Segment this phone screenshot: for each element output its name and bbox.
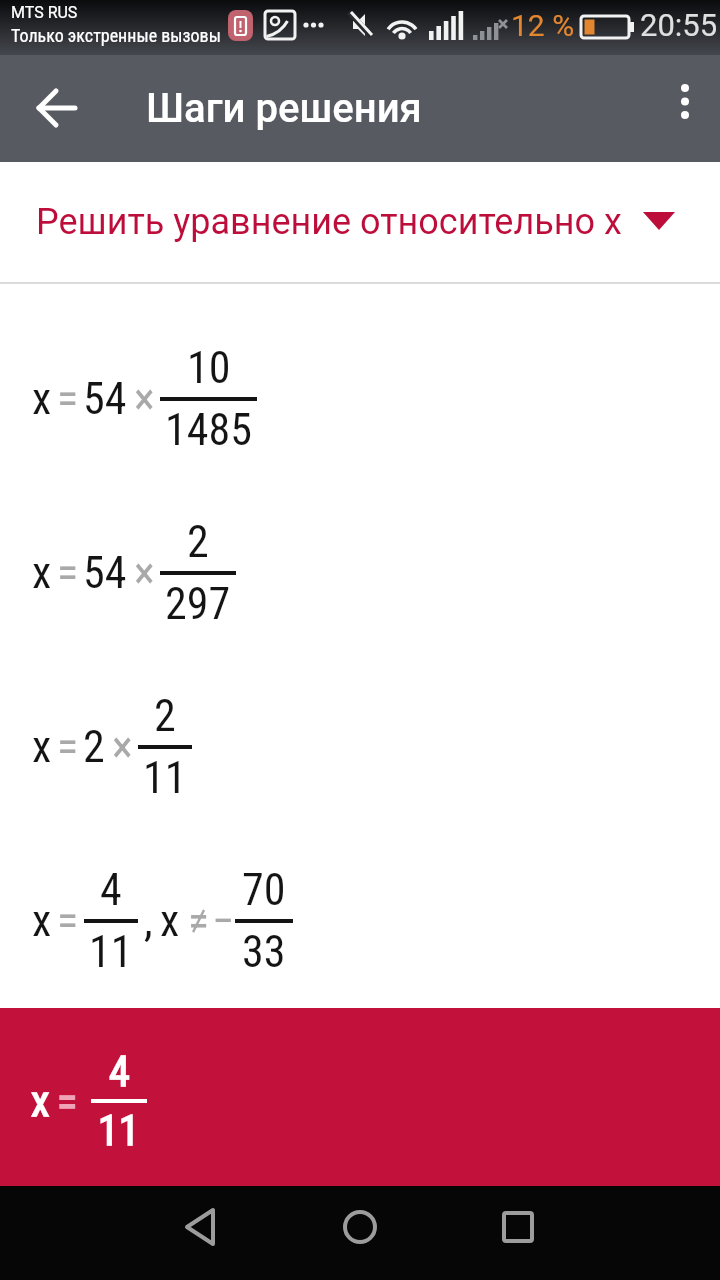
button[interactable] xyxy=(650,55,720,162)
staticText: 2 xyxy=(187,516,209,568)
staticText: = xyxy=(57,547,79,599)
staticText: 4 xyxy=(100,864,122,916)
staticText: 12 % xyxy=(511,8,575,43)
staticText: = xyxy=(57,721,79,773)
staticText: x xyxy=(160,895,180,947)
staticText: , xyxy=(144,895,153,947)
staticText: = xyxy=(57,1077,78,1126)
staticText: × xyxy=(112,721,133,773)
staticText: x xyxy=(31,1077,50,1126)
staticText: x xyxy=(32,721,52,773)
staticText: 33 xyxy=(242,926,286,978)
staticText: × xyxy=(134,547,155,599)
staticText: = xyxy=(57,373,79,425)
staticText: = xyxy=(57,895,79,947)
staticText: × xyxy=(134,373,155,425)
staticText: 1485 xyxy=(165,404,252,456)
staticText: ≠ xyxy=(188,895,210,947)
staticText: 11 xyxy=(143,752,187,804)
staticText: Решить уравнение относительно x xyxy=(36,201,622,243)
staticText: MTS RUS xyxy=(11,3,78,22)
button[interactable]: Решить уравнение относительно x xyxy=(0,162,720,282)
staticText: 20:55 xyxy=(640,7,718,43)
staticText: Шаги решения xyxy=(146,85,422,132)
staticText: 4 xyxy=(109,1047,130,1096)
staticText: 297 xyxy=(165,578,231,630)
staticText: 70 xyxy=(242,864,286,916)
staticText: Только экстренные вызовы xyxy=(11,25,221,46)
staticText: − xyxy=(212,895,234,947)
staticText: 11 xyxy=(89,926,133,978)
staticText: 2 xyxy=(83,721,105,773)
staticText: 2 xyxy=(154,690,176,742)
button[interactable] xyxy=(320,1187,400,1267)
button[interactable] xyxy=(478,1187,558,1267)
button[interactable]: x xyxy=(0,1008,720,1186)
staticText: x xyxy=(32,895,52,947)
staticText: 54 xyxy=(83,373,127,425)
staticText: x xyxy=(32,373,52,425)
staticText: 10 xyxy=(187,342,231,394)
staticText: x xyxy=(32,547,52,599)
staticText: 11 xyxy=(98,1106,140,1155)
button[interactable] xyxy=(0,55,110,162)
staticText: 54 xyxy=(83,547,127,599)
button[interactable] xyxy=(160,1187,240,1267)
